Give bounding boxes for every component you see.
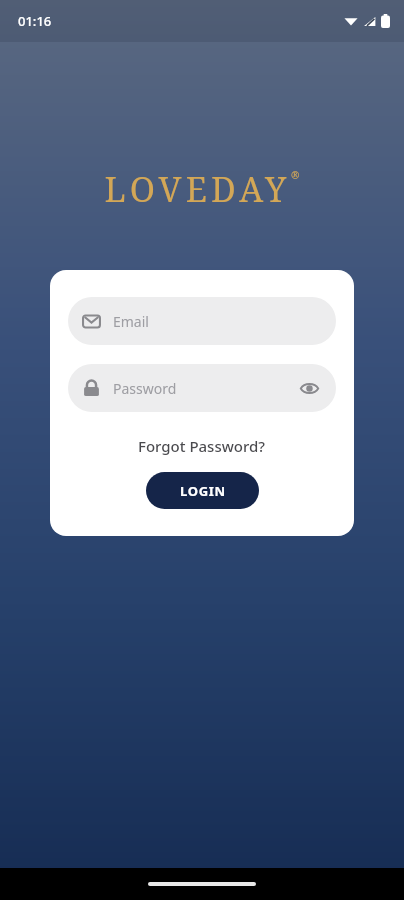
- button[interactable]: Show password: [296, 375, 322, 401]
- staticText: Email: [113, 312, 149, 331]
- button[interactable]: Email: [68, 297, 336, 345]
- staticText: Forgot Password?: [138, 436, 266, 456]
- staticText: LOGIN: [180, 482, 226, 500]
- staticText: ®: [291, 168, 300, 182]
- staticText: 01:16: [18, 12, 52, 30]
- staticText: Password: [113, 379, 177, 398]
- button[interactable]: LOGIN: [146, 472, 259, 509]
- button[interactable]: Forgot Password?: [68, 432, 336, 460]
- button[interactable]: Password: [68, 364, 336, 412]
- staticText: LOVEDAY: [104, 166, 291, 212]
